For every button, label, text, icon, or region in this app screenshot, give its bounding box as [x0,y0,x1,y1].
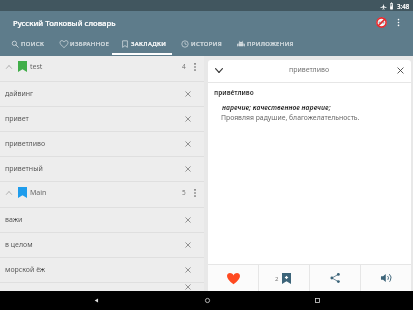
button[interactable]: ИЗБРАННОЕ [55,35,115,52]
staticText: важи [5,215,23,225]
button[interactable]: ЗАКЛАДКИ [116,35,172,52]
staticText: 2 [275,275,279,283]
button[interactable]: ПРИЛОЖЕНИЯ [232,35,299,52]
staticText: приветливо [289,65,330,75]
staticText: Русский Толковый словарь [13,18,116,28]
staticText: приветный [5,164,43,174]
staticText: ЗАКЛАДКИ [131,40,167,48]
staticText: ПРИЛОЖЕНИЯ [247,40,294,48]
button[interactable]: Collapse [208,60,230,81]
button[interactable]: Home [193,291,221,310]
button[interactable]: Group menu [186,58,203,75]
button[interactable]: Remove ads [371,12,391,32]
button[interactable]: Close [389,60,411,81]
button[interactable]: Share [310,265,360,291]
button[interactable]: привет [0,107,204,131]
button[interactable]: Delete [178,283,198,291]
staticText: ИСТОРИЯ [191,40,222,48]
button[interactable]: Delete [0,283,204,291]
button[interactable]: Delete [178,159,198,179]
staticText: ПОИСК [21,40,45,48]
staticText: наречие; качественное наречие; [222,103,331,112]
staticText: морской ёж [5,265,46,275]
button[interactable]: ИСТОРИЯ [176,35,227,52]
button[interactable]: More options [388,12,408,32]
button[interactable]: Group menu [186,184,203,201]
staticText: привет [5,114,29,124]
staticText: в целом [5,240,33,250]
button[interactable]: Pronounce [361,265,411,291]
button[interactable]: важи [0,208,204,232]
staticText: дайвинг [5,89,34,99]
button[interactable]: Back [82,291,110,310]
button[interactable]: Delete [178,260,198,280]
button[interactable]: Favorite [208,265,258,291]
staticText: Main [30,188,47,198]
staticText: 4 [182,62,186,71]
staticText: 5 [182,188,186,197]
button[interactable]: Delete [178,134,198,154]
button[interactable]: Delete [178,84,198,104]
button[interactable]: морской ёж [0,258,204,282]
button[interactable]: в целом [0,233,204,257]
staticText: приве́тливо [214,88,254,97]
button[interactable]: Bookmark [259,265,309,291]
button[interactable]: приветный [0,157,204,181]
button[interactable]: ПОИСК [6,35,50,52]
button[interactable]: дайвинг [0,82,204,106]
staticText: Проявляя радушие, благожелательность. [221,113,360,122]
staticText: test [30,62,43,72]
staticText: ИЗБРАННОЕ [70,40,110,48]
button[interactable]: Delete [178,210,198,230]
staticText: приветливо [5,139,46,149]
button[interactable]: Recents [303,291,331,310]
button[interactable]: Delete [178,109,198,129]
button[interactable]: Main [0,182,204,207]
button[interactable]: Delete [178,235,198,255]
button[interactable]: приветливо [0,132,204,156]
button[interactable]: test [0,56,204,81]
staticText: 3:48 [397,2,410,10]
